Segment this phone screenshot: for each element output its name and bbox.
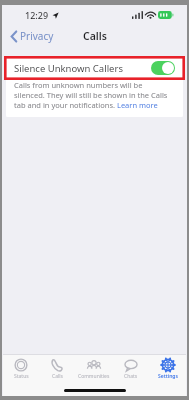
- staticText: Calls: [83, 29, 107, 43]
- button[interactable]: Silence Unknown Callers toggle, on: [151, 61, 175, 75]
- button[interactable]: Silence Unknown Callers: [6, 57, 183, 79]
- staticText: Chats: [124, 373, 138, 380]
- staticText: 12:29: [25, 9, 49, 21]
- staticText: Settings: [158, 373, 178, 380]
- staticText: Communities: [78, 373, 110, 380]
- staticText: Calls: [52, 373, 63, 380]
- button[interactable]: Communities: [75, 355, 112, 385]
- staticText: Privacy: [20, 29, 54, 43]
- staticText: Silence Unknown Callers: [14, 62, 123, 75]
- button[interactable]: Chats: [112, 355, 149, 385]
- button[interactable]: Settings: [149, 355, 186, 385]
- staticText: Calls from unknown numbers will be silen…: [14, 80, 173, 110]
- button[interactable]: Status: [3, 355, 39, 385]
- button[interactable]: Privacy: [3, 26, 60, 46]
- staticText: Status: [14, 373, 29, 380]
- button[interactable]: Calls: [39, 355, 75, 385]
